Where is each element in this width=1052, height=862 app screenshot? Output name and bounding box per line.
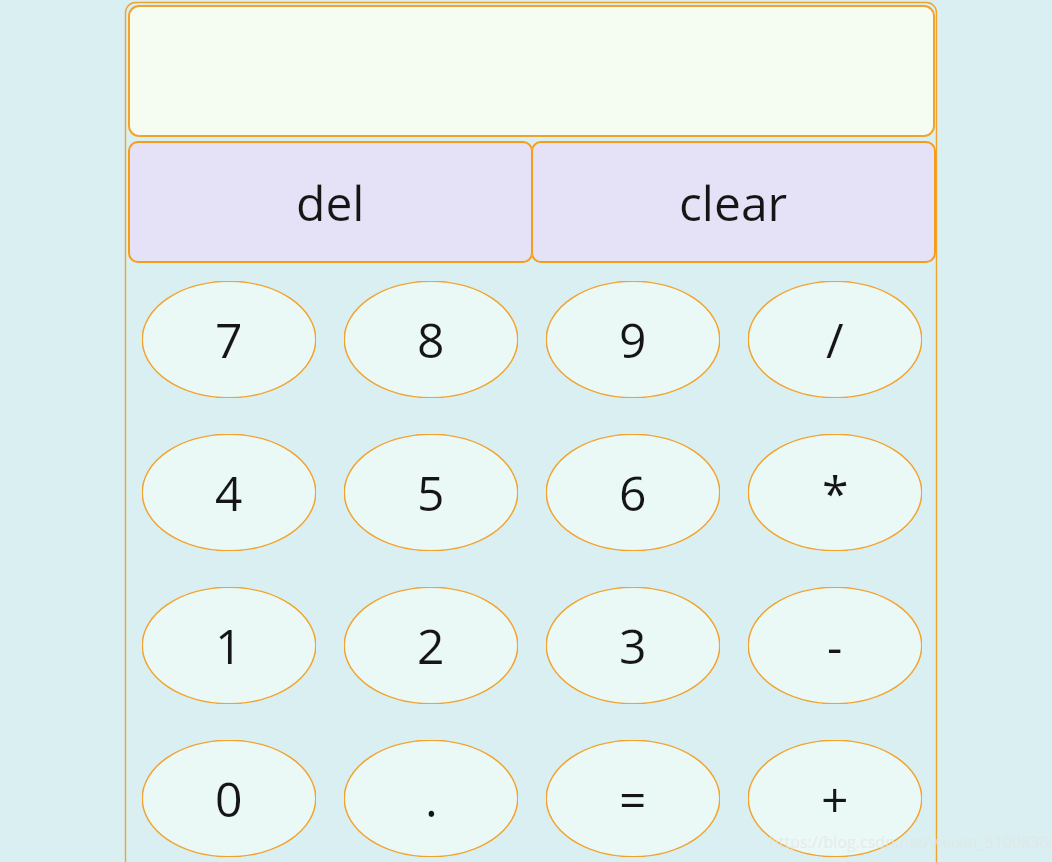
staticText: 0 xyxy=(215,766,243,831)
staticText: del xyxy=(296,170,365,235)
staticText: 9 xyxy=(619,307,647,372)
button[interactable]: . xyxy=(344,740,518,857)
staticText: + xyxy=(821,766,849,831)
staticText: 4 xyxy=(215,460,243,525)
button[interactable]: del xyxy=(128,141,533,263)
staticText: . xyxy=(425,766,438,831)
staticText: https://blog.csdn.net/weixin_51008360 xyxy=(769,831,1052,853)
button[interactable]: clear xyxy=(531,141,936,263)
staticText: clear xyxy=(679,170,788,235)
button[interactable]: 9 xyxy=(546,281,720,398)
button[interactable]: * xyxy=(748,434,922,551)
button[interactable]: 6 xyxy=(546,434,720,551)
button[interactable]: + xyxy=(748,740,922,857)
staticText: = xyxy=(619,766,647,831)
button[interactable]: 3 xyxy=(546,587,720,704)
button[interactable]: 5 xyxy=(344,434,518,551)
staticText: 1 xyxy=(215,613,243,678)
button[interactable]: 1 xyxy=(142,587,316,704)
staticText: 7 xyxy=(215,307,243,372)
staticText: * xyxy=(822,460,849,525)
staticText: - xyxy=(827,613,843,678)
button[interactable]: 4 xyxy=(142,434,316,551)
button[interactable]: 0 xyxy=(142,740,316,857)
button[interactable]: 8 xyxy=(344,281,518,398)
staticText: 6 xyxy=(619,460,647,525)
button[interactable]: 2 xyxy=(344,587,518,704)
button[interactable]: = xyxy=(546,740,720,857)
button[interactable] xyxy=(128,5,935,137)
staticText: 2 xyxy=(417,613,445,678)
staticText: 5 xyxy=(417,460,445,525)
staticText: / xyxy=(826,307,844,372)
staticText: 8 xyxy=(417,307,445,372)
button[interactable]: - xyxy=(748,587,922,704)
button[interactable]: 7 xyxy=(142,281,316,398)
button[interactable]: / xyxy=(748,281,922,398)
staticText: 3 xyxy=(619,613,647,678)
